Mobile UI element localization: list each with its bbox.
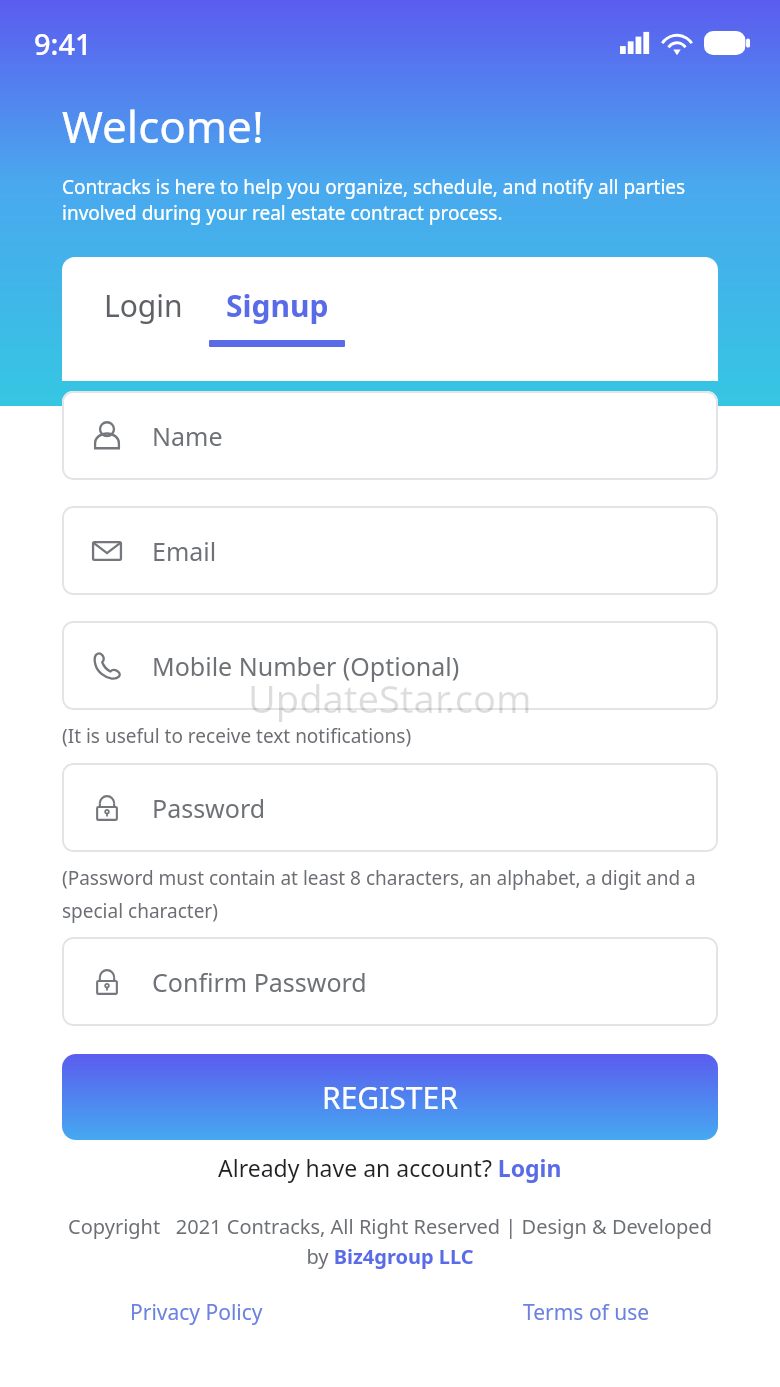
staticText: Contracks is here to help you organize, … xyxy=(62,174,714,226)
staticText: Privacy Policy xyxy=(130,1298,263,1327)
button[interactable]: REGISTER xyxy=(62,1054,718,1140)
staticText: Email xyxy=(152,534,217,568)
staticText: Already have an account? Login xyxy=(218,1152,562,1183)
button[interactable]: Privacy Policy xyxy=(130,1298,263,1327)
staticText: Confirm Password xyxy=(152,965,367,999)
button[interactable]: Login xyxy=(62,257,209,346)
staticText: Copyright 2021 Contracks, All Right Rese… xyxy=(62,1213,718,1270)
staticText: Terms of use xyxy=(523,1298,650,1327)
button[interactable]: Name xyxy=(62,391,718,480)
button[interactable]: Confirm Password xyxy=(62,937,718,1026)
staticText: Password xyxy=(152,791,266,825)
staticText: UpdateStar.com xyxy=(248,672,532,724)
button[interactable]: Already have an account? Login xyxy=(0,1152,780,1183)
staticText: Welcome! xyxy=(62,96,264,156)
staticText: REGISTER xyxy=(322,1077,458,1118)
button[interactable]: Password xyxy=(62,763,718,852)
staticText: (It is useful to receive text notificati… xyxy=(62,723,412,749)
staticText: Signup xyxy=(226,285,329,326)
staticText: Mobile Number (Optional) xyxy=(152,649,460,683)
staticText: 9:41 xyxy=(34,24,92,63)
button[interactable]: Email xyxy=(62,506,718,595)
staticText: Name xyxy=(152,419,223,453)
button[interactable]: Mobile Number (Optional) xyxy=(62,621,718,710)
staticText: Login xyxy=(104,285,183,326)
staticText: (Password must contain at least 8 charac… xyxy=(62,865,718,923)
button[interactable]: Terms of use xyxy=(523,1298,650,1327)
button[interactable]: Signup xyxy=(209,257,345,355)
